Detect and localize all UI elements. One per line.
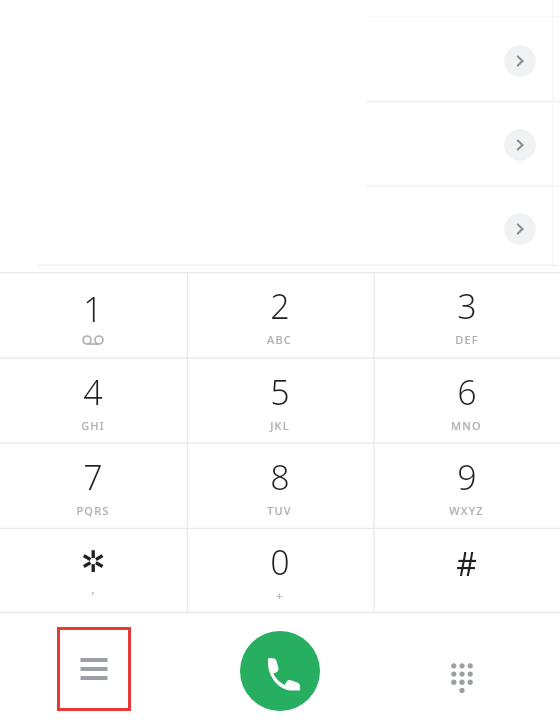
button[interactable]: Menu bbox=[57, 627, 131, 711]
staticText: 3 bbox=[457, 283, 477, 329]
staticText: 9 bbox=[457, 454, 477, 500]
staticText: PQRS bbox=[76, 503, 110, 518]
staticText: 1 bbox=[83, 286, 103, 332]
button[interactable]: 6 bbox=[373, 358, 560, 443]
button[interactable]: 1 bbox=[0, 272, 186, 358]
staticText: WXYZ bbox=[449, 503, 484, 518]
button[interactable]: 4 bbox=[0, 358, 186, 443]
staticText: 2 bbox=[270, 283, 290, 329]
staticText: + bbox=[276, 588, 284, 603]
button[interactable]: ✲ bbox=[0, 528, 186, 613]
button[interactable]: 7 bbox=[0, 443, 186, 528]
staticText: 4 bbox=[83, 369, 103, 415]
staticText: ABC bbox=[267, 332, 292, 347]
button[interactable]: Expand bbox=[504, 213, 536, 245]
button[interactable]: Keypad bbox=[430, 644, 494, 708]
button[interactable]: 9 bbox=[373, 443, 560, 528]
button[interactable]: Call bbox=[240, 631, 320, 711]
button[interactable]: 8 bbox=[186, 443, 373, 528]
staticText: TUV bbox=[267, 503, 292, 518]
staticText: 6 bbox=[457, 369, 477, 415]
staticText: 5 bbox=[270, 369, 290, 415]
staticText: GHI bbox=[81, 418, 105, 433]
button[interactable]: 5 bbox=[186, 358, 373, 443]
button[interactable]: 2 bbox=[186, 272, 373, 358]
button[interactable]: # bbox=[373, 528, 560, 613]
button[interactable]: Expand bbox=[504, 129, 536, 161]
staticText: JKL bbox=[270, 418, 290, 433]
staticText: , bbox=[91, 582, 96, 597]
staticText: DEF bbox=[455, 332, 479, 347]
button[interactable]: Expand bbox=[504, 45, 536, 77]
button[interactable]: 0 bbox=[186, 528, 373, 613]
staticText: 8 bbox=[270, 454, 290, 500]
staticText: ✲ bbox=[80, 544, 106, 579]
staticText: # bbox=[456, 542, 477, 586]
staticText: 0 bbox=[270, 539, 290, 585]
staticText: 7 bbox=[83, 454, 103, 500]
button[interactable]: 3 bbox=[373, 272, 560, 358]
staticText: MNO bbox=[451, 418, 482, 433]
